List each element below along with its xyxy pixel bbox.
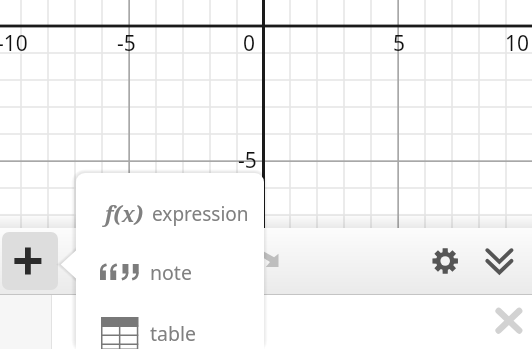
staticText: note <box>150 259 192 286</box>
button[interactable]: Zoom fit <box>258 249 282 273</box>
staticText: 5 <box>393 29 406 58</box>
staticText: -10 <box>0 29 28 58</box>
button[interactable]: Collapse keypad <box>482 246 517 281</box>
staticText: 0 <box>243 29 256 58</box>
button[interactable]: Add expression <box>2 232 58 290</box>
button[interactable]: table <box>76 304 264 349</box>
staticText: -5 <box>238 146 257 175</box>
button[interactable]: note <box>76 243 264 301</box>
staticText: 10 <box>505 29 530 58</box>
button[interactable]: Settings <box>425 241 465 281</box>
button[interactable]: f(x) <box>76 185 264 243</box>
staticText: expression <box>152 201 249 227</box>
staticText: f(x) <box>105 200 143 229</box>
button[interactable]: Close <box>488 301 530 343</box>
staticText: -5 <box>117 29 136 58</box>
staticText: table <box>150 320 197 347</box>
